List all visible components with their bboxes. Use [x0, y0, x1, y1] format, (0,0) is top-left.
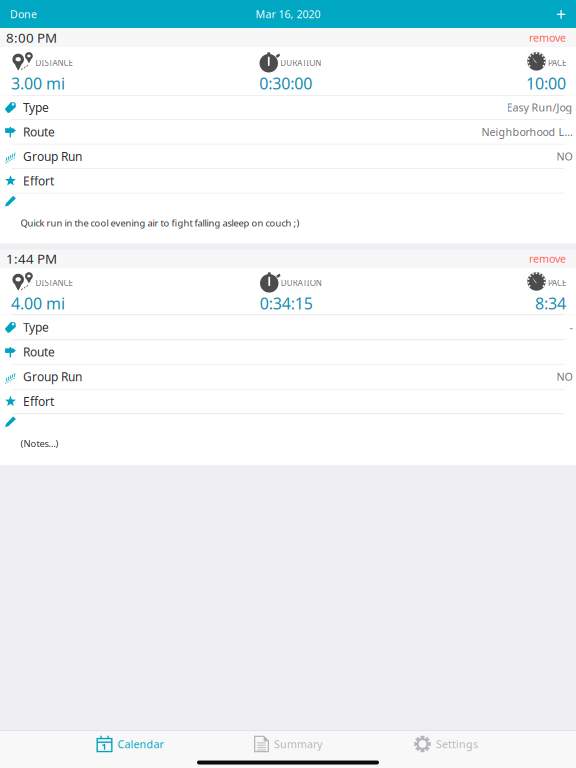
button[interactable]: Quick run in the cool evening air to fig…: [0, 194, 576, 244]
staticText: NO: [556, 149, 572, 163]
staticText: Done: [10, 7, 37, 21]
staticText: 8:00 PM: [6, 29, 57, 46]
staticText: Mar 16, 2020: [255, 7, 320, 21]
staticText: 3.00 mi: [11, 73, 65, 94]
staticText: Effort: [23, 173, 54, 189]
button[interactable]: (Notes…): [0, 414, 576, 465]
staticText: (Notes…): [20, 437, 58, 450]
staticText: -: [569, 320, 572, 334]
staticText: DISTANCE: [35, 278, 72, 288]
staticText: NO: [556, 370, 572, 384]
staticText: DURATION: [280, 57, 321, 68]
staticText: Summary: [274, 737, 322, 751]
staticText: remove: [529, 30, 566, 45]
button[interactable]: Settings: [367, 731, 525, 757]
staticText: Group Run: [23, 148, 82, 164]
staticText: PACE: [548, 57, 566, 68]
staticText: Group Run: [23, 369, 82, 385]
button[interactable]: Effort: [0, 169, 576, 194]
button[interactable]: Done: [0, 0, 47, 28]
staticText: Easy Run/Jog: [506, 100, 572, 114]
staticText: Effort: [23, 393, 54, 409]
staticText: Type: [23, 319, 49, 335]
staticText: +: [556, 2, 566, 25]
button[interactable]: Group Run: [0, 145, 576, 169]
button[interactable]: remove: [521, 28, 574, 47]
staticText: 0:30:00: [259, 73, 312, 94]
staticText: remove: [529, 251, 566, 266]
button[interactable]: remove: [521, 250, 574, 268]
button[interactable]: Route: [0, 340, 576, 365]
staticText: DISTANCE: [35, 57, 72, 68]
staticText: Settings: [436, 737, 478, 751]
button[interactable]: DISTANCE: [0, 47, 576, 95]
staticText: 8:34: [535, 293, 566, 314]
button[interactable]: Route: [0, 120, 576, 145]
button[interactable]: Calendar: [51, 731, 209, 757]
button[interactable]: DISTANCE: [0, 268, 576, 315]
button[interactable]: Type: [0, 315, 576, 340]
staticText: 10:00: [526, 73, 566, 94]
staticText: Type: [23, 99, 49, 115]
staticText: Quick run in the cool evening air to fig…: [20, 217, 299, 229]
staticText: Route: [23, 124, 55, 140]
button[interactable]: Group Run: [0, 365, 576, 390]
button[interactable]: Type: [0, 96, 576, 120]
staticText: DURATION: [281, 278, 322, 288]
button[interactable]: Add run: [546, 0, 576, 28]
button[interactable]: Effort: [0, 390, 576, 414]
staticText: 4.00 mi: [11, 293, 65, 314]
button[interactable]: Summary: [209, 731, 367, 757]
staticText: 1:44 PM: [6, 250, 57, 267]
staticText: Calendar: [117, 737, 163, 751]
staticText: Neighborhood L…: [481, 125, 572, 139]
staticText: 0:34:15: [260, 293, 313, 314]
staticText: Route: [23, 344, 55, 360]
staticText: PACE: [548, 278, 566, 288]
